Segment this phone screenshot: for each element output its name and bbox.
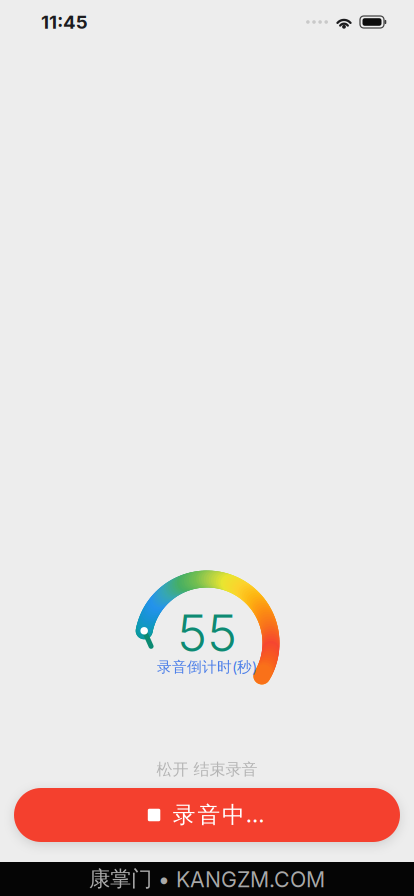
staticText: 55	[177, 602, 237, 664]
staticText: 录音中...	[173, 801, 266, 829]
button[interactable]: 录音中...	[14, 788, 400, 842]
staticText: 11:45	[41, 11, 88, 33]
staticText: 松开 结束录音	[156, 759, 257, 780]
staticText: 康掌门 • KANGZM.COM	[89, 866, 325, 892]
staticText: 录音倒计时(秒)	[157, 658, 257, 676]
